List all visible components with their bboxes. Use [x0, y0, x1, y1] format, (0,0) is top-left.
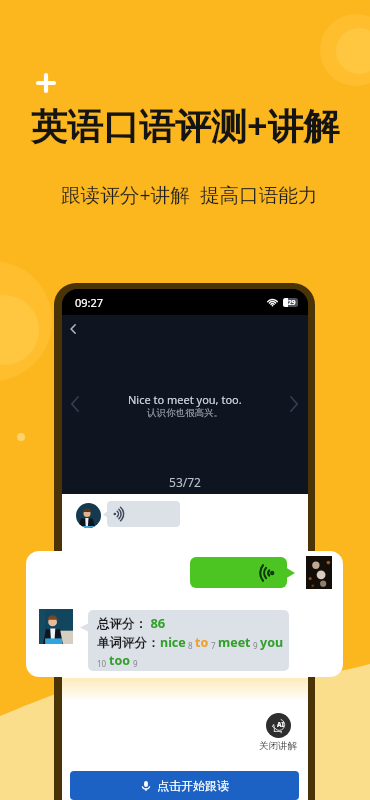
staticText: nice [160, 634, 186, 651]
staticText: 关闭讲解 [259, 740, 297, 752]
staticText: 跟读评分+讲解 提高口语能力 [61, 181, 318, 208]
staticText: AI [277, 720, 285, 729]
staticText: 7 [209, 640, 218, 651]
staticText: 总评分： [97, 616, 147, 632]
staticText: 9 [131, 658, 138, 669]
staticText: 29 [288, 298, 296, 307]
staticText: 9 [251, 640, 260, 651]
staticText: 点击开始跟读 [157, 778, 229, 793]
staticText: 10 [97, 658, 109, 669]
staticText: 8 [186, 640, 195, 651]
staticText: 09:27 [75, 295, 104, 310]
staticText: 53/72 [62, 474, 308, 490]
button[interactable]: 点击开始跟读 [70, 771, 299, 800]
staticText: you [260, 634, 284, 651]
staticText: Nice to meet you, too. [128, 392, 242, 407]
button[interactable]: Next [283, 393, 305, 415]
staticText: to [195, 634, 209, 651]
button[interactable]: 关闭讲解 [256, 713, 300, 752]
staticText: meet [218, 634, 251, 651]
staticText: 认识你也很高兴。 [147, 407, 223, 419]
staticText: 单词评分： [97, 635, 160, 651]
staticText: 86 [147, 614, 166, 632]
staticText: too [109, 652, 131, 669]
staticText: 英语口语评测+讲解 [31, 101, 340, 150]
button[interactable]: Previous [65, 393, 87, 415]
button[interactable]: Back [65, 318, 87, 340]
